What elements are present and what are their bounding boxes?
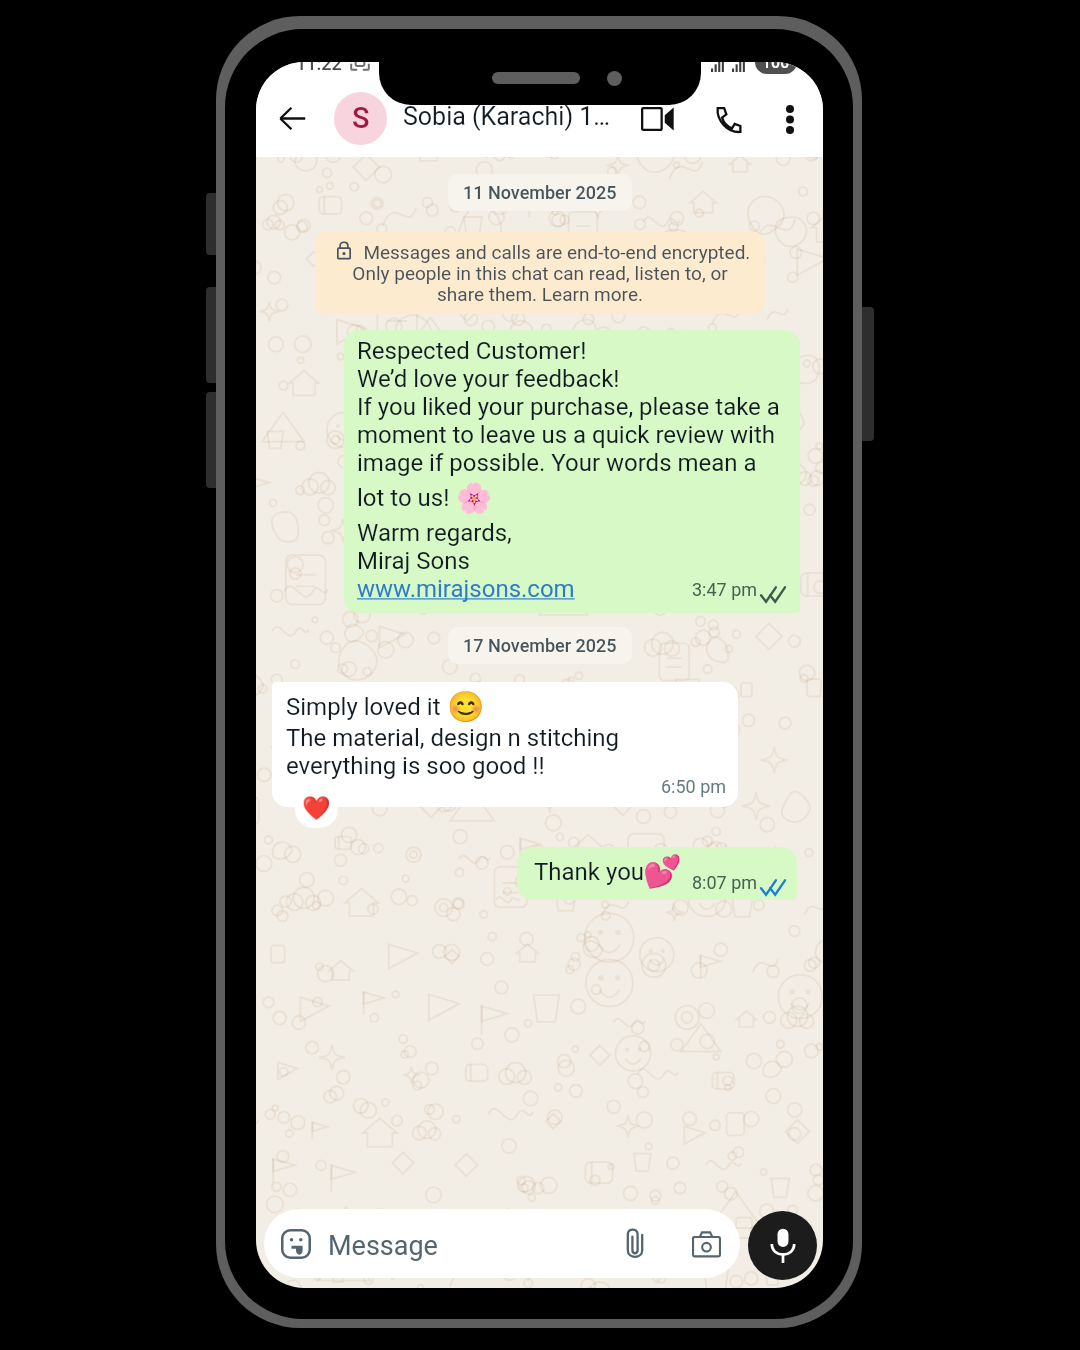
- button[interactable]: Voice call: [706, 97, 750, 141]
- button[interactable]: ❤️: [295, 791, 338, 828]
- button[interactable]: Video call: [635, 97, 679, 141]
- button[interactable]: Messages and calls are end-to-end encryp…: [315, 232, 765, 314]
- staticText: Respected Customer! We’d love your feedb…: [357, 337, 789, 477]
- staticText: ❤️: [302, 795, 331, 822]
- staticText: 6:50 pm: [661, 776, 727, 797]
- staticText: Message: [328, 1230, 438, 1262]
- button[interactable]: Back: [270, 96, 314, 140]
- staticText: 17 November 2025: [463, 635, 617, 656]
- staticText: 8:07 pm: [692, 872, 758, 893]
- staticText: 3:47 pm: [692, 579, 758, 600]
- staticText: 100: [762, 62, 790, 72]
- button[interactable]: Thank you: [517, 847, 797, 900]
- button[interactable]: S: [334, 92, 387, 145]
- button[interactable]: 17 November 2025: [448, 627, 632, 664]
- button[interactable]: Respected Customer! We’d love your feedb…: [344, 330, 800, 613]
- button[interactable]: Simply loved it: [272, 682, 738, 807]
- staticText: S: [352, 101, 370, 135]
- staticText: lot to us!: [357, 484, 456, 512]
- staticText: 11 November 2025: [463, 182, 617, 203]
- button[interactable]: Voice message: [748, 1211, 817, 1280]
- button[interactable]: Camera: [684, 1222, 728, 1266]
- staticText: www.mirajsons.com: [357, 575, 575, 603]
- staticText: Sobia (Karachi) 1…: [403, 102, 611, 131]
- button[interactable]: More options: [768, 97, 812, 141]
- staticText: 11:22: [296, 62, 342, 74]
- staticText: Warm regards, Miraj Sons: [357, 519, 512, 575]
- button[interactable]: Emoji: [276, 1224, 316, 1264]
- button[interactable]: Emoji: [264, 1209, 740, 1278]
- staticText: 🌸: [456, 481, 493, 515]
- staticText: The material, design n stitching everyth…: [286, 724, 727, 780]
- button[interactable]: 11 November 2025: [448, 174, 632, 211]
- staticText: Messages and calls are end-to-end encryp…: [327, 241, 753, 305]
- staticText: 💕: [643, 853, 682, 889]
- button[interactable]: Attach: [613, 1221, 657, 1265]
- staticText: 😊: [447, 689, 485, 724]
- staticText: Thank you: [534, 858, 645, 886]
- staticText: Simply loved it: [286, 693, 447, 721]
